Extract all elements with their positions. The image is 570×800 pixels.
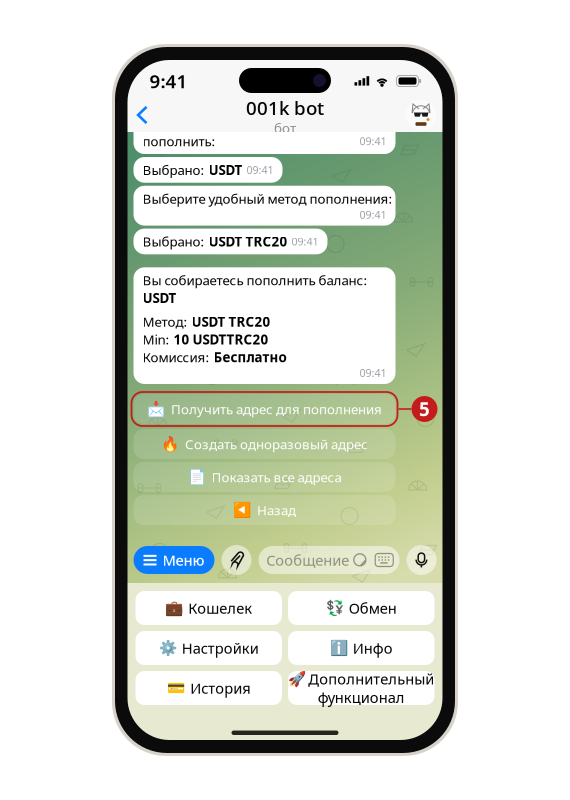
- staticText: История: [190, 678, 250, 698]
- staticText: 💱: [326, 600, 344, 616]
- button[interactable]: 🔥: [133, 429, 395, 459]
- button[interactable]: ◀️: [133, 495, 395, 525]
- staticText: функционал: [318, 687, 405, 707]
- staticText: Комиссия:: [142, 348, 209, 366]
- button[interactable]: 💳: [135, 671, 282, 705]
- staticText: 🚀: [288, 670, 306, 687]
- staticText: пополнить:: [142, 132, 215, 150]
- button[interactable]: Сообщение: [258, 546, 399, 574]
- staticText: 09:41: [359, 134, 386, 148]
- button[interactable]: 📩: [133, 394, 395, 424]
- staticText: Выбрано:: [142, 161, 204, 179]
- button[interactable]: ℹ️: [288, 631, 434, 665]
- staticText: Кошелек: [188, 598, 252, 618]
- staticText: 🔥: [161, 436, 179, 452]
- staticText: 09:41: [291, 234, 318, 249]
- staticText: Меню: [162, 550, 204, 570]
- staticText: Выбрано:: [142, 233, 204, 250]
- staticText: Вы собираетесь пополнить баланс:: [142, 271, 367, 289]
- staticText: Обмен: [349, 598, 397, 618]
- button[interactable]: 📄: [133, 462, 395, 492]
- staticText: ◀️: [233, 502, 251, 518]
- staticText: Бесплатно: [213, 348, 286, 366]
- button[interactable]: 💼: [135, 591, 282, 625]
- staticText: Назад: [257, 501, 296, 519]
- staticText: Min:: [142, 330, 169, 348]
- staticText: Показать все адреса: [211, 468, 341, 486]
- staticText: 9:41: [149, 69, 187, 93]
- button[interactable]: Attach: [221, 545, 251, 575]
- button[interactable]: ⚙️: [135, 631, 282, 665]
- staticText: USDT TRC20: [191, 313, 270, 330]
- staticText: Выберите удобный метод пополнения:: [142, 190, 392, 207]
- staticText: USDT: [208, 161, 242, 179]
- staticText: 10 USDTTRC20: [173, 330, 268, 348]
- staticText: USDT TRC20: [208, 233, 287, 250]
- staticText: 09:41: [246, 163, 273, 177]
- staticText: 001k bot: [246, 95, 324, 120]
- button[interactable]: Record voice message: [406, 545, 436, 575]
- staticText: ℹ️: [330, 640, 348, 656]
- button[interactable]: Меню: [133, 546, 214, 574]
- staticText: Настройки: [182, 638, 259, 658]
- staticText: USDT: [142, 289, 176, 307]
- staticText: 💳: [167, 680, 185, 696]
- staticText: Метод:: [142, 313, 187, 330]
- staticText: Получить адрес для пополнения: [171, 400, 382, 418]
- staticText: Дополнительный: [308, 669, 434, 688]
- staticText: ⚙️: [159, 640, 177, 656]
- button[interactable]: Chat info: [405, 99, 442, 130]
- button[interactable]: Back: [127, 98, 157, 132]
- staticText: 09:41: [359, 207, 386, 222]
- staticText: 09:41: [359, 366, 386, 380]
- button[interactable]: 💱: [288, 591, 434, 625]
- staticText: Сообщение: [266, 550, 349, 570]
- staticText: 💼: [165, 600, 183, 616]
- staticText: 5: [419, 397, 430, 421]
- staticText: 📄: [187, 469, 205, 485]
- staticText: Создать одноразовый адрес: [185, 435, 368, 453]
- staticText: Выберите валюту, которую хотите: [142, 115, 361, 132]
- button[interactable]: 🚀: [288, 671, 434, 705]
- staticText: 📩: [147, 401, 165, 417]
- staticText: Инфо: [353, 638, 393, 658]
- staticText: бот: [274, 119, 296, 137]
